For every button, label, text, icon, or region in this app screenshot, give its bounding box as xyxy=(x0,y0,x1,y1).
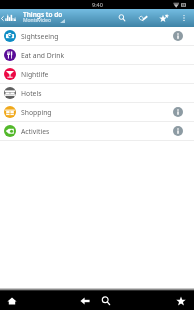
button[interactable]: Hotels xyxy=(0,84,194,102)
button[interactable]: Write a review xyxy=(133,9,154,27)
staticText: Hotels xyxy=(21,89,42,98)
button[interactable]: Shopping xyxy=(0,103,194,121)
button[interactable]: More information about Shopping xyxy=(169,103,187,121)
staticText: Activities xyxy=(21,127,50,136)
button[interactable]: More information about Activities xyxy=(169,122,187,140)
staticText: Montevideo xyxy=(23,17,51,24)
staticText: Shopping xyxy=(21,108,52,117)
staticText: Eat and Drink xyxy=(21,51,65,60)
button[interactable]: More options xyxy=(174,9,194,27)
button[interactable]: Activities xyxy=(0,122,194,140)
button[interactable]: Nightlife xyxy=(0,65,194,83)
button[interactable]: Sightseeing xyxy=(0,27,194,45)
staticText: Things to do xyxy=(23,10,63,19)
staticText: Nightlife xyxy=(21,70,49,79)
button[interactable]: Back xyxy=(77,293,93,309)
button[interactable]: More information about Sightseeing xyxy=(169,27,187,45)
button[interactable]: Favorites xyxy=(173,293,189,309)
staticText: 9:40 xyxy=(92,1,103,8)
button[interactable]: Navigate up xyxy=(0,9,16,27)
button[interactable]: Search xyxy=(111,9,133,27)
button[interactable]: Search xyxy=(98,293,114,309)
button[interactable]: Saved xyxy=(154,9,174,27)
button[interactable]: Eat and Drink xyxy=(0,46,194,64)
button[interactable]: Home xyxy=(4,293,20,309)
staticText: Sightseeing xyxy=(21,32,59,41)
